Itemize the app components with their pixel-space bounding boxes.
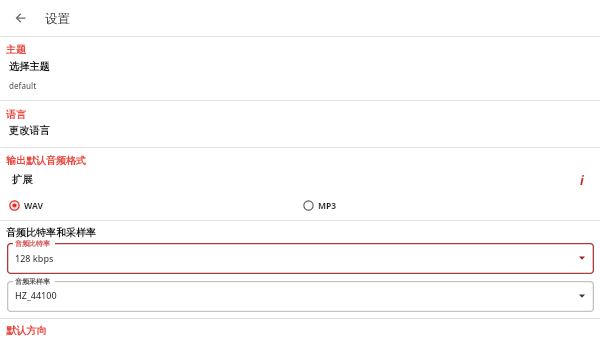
staticText: 选择主题 <box>9 60 50 73</box>
button[interactable]: WAV <box>5 196 299 215</box>
staticText: 输出默认音频格式 <box>6 154 86 167</box>
staticText: 音频采样率 <box>15 277 50 286</box>
button[interactable]: 默认方向 <box>0 319 600 338</box>
button[interactable]: Expand 音频采样率 <box>572 286 592 306</box>
staticText: 128 kbps <box>15 252 54 264</box>
button[interactable]: 语言 <box>0 101 600 147</box>
button[interactable]: Info <box>571 168 593 190</box>
staticText: 音频比特率 <box>15 239 50 248</box>
button[interactable]: MP3 <box>299 196 589 215</box>
staticText: WAV <box>24 200 43 212</box>
staticText: 默认方向 <box>6 324 47 337</box>
staticText: 语言 <box>6 108 26 121</box>
button[interactable]: Expand 音频比特率 <box>572 248 592 268</box>
button[interactable] <box>7 243 594 274</box>
staticText: 更改语言 <box>9 124 50 137</box>
button[interactable]: 输出默认音频格式 <box>0 148 600 192</box>
staticText: i <box>580 172 584 189</box>
button[interactable]: 主题 <box>0 37 600 100</box>
staticText: default <box>9 80 37 91</box>
button[interactable]: 设置 <box>40 0 100 36</box>
button[interactable]: Back <box>8 5 33 30</box>
staticText: 音频比特率和采样率 <box>6 226 96 239</box>
staticText: 扩展 <box>12 173 33 186</box>
staticText: HZ_44100 <box>15 289 57 301</box>
staticText: 主题 <box>6 43 26 56</box>
staticText: 设置 <box>45 11 70 26</box>
staticText: MP3 <box>318 200 337 212</box>
button[interactable] <box>7 281 594 312</box>
